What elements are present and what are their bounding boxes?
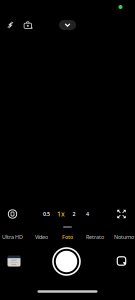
button[interactable]: 4 [81, 207, 94, 220]
staticText: Foto [62, 233, 73, 241]
button[interactable]: Vídeo [28, 231, 54, 243]
button[interactable]: Aspect ratio [113, 206, 129, 222]
staticText: Vídeo [35, 233, 48, 241]
button[interactable]: Take photo [52, 247, 80, 275]
button[interactable]: 0.5 [40, 207, 53, 220]
button[interactable]: Photo library [7, 255, 20, 266]
staticText: 4 [86, 210, 89, 218]
staticText: Noturno [114, 233, 134, 241]
button[interactable]: Flip camera [113, 253, 129, 269]
button[interactable]: More camera controls [59, 20, 76, 30]
staticText: Retrato [86, 233, 104, 241]
button[interactable]: 1x [54, 207, 67, 220]
staticText: 0.5 [43, 210, 50, 218]
button[interactable]: Ultra HD [0, 231, 25, 243]
button[interactable]: Flash off [1, 16, 19, 34]
button[interactable]: Retrato [82, 231, 108, 243]
staticText: 2 [72, 210, 75, 218]
button[interactable]: Noturno [111, 231, 135, 243]
button[interactable]: Photographic styles [4, 206, 20, 222]
button[interactable]: Foto [54, 231, 80, 243]
staticText: 1x [57, 210, 65, 218]
button[interactable]: Night mode [19, 16, 37, 34]
button[interactable]: 2 [67, 207, 80, 220]
staticText: Ultra HD [2, 233, 23, 241]
